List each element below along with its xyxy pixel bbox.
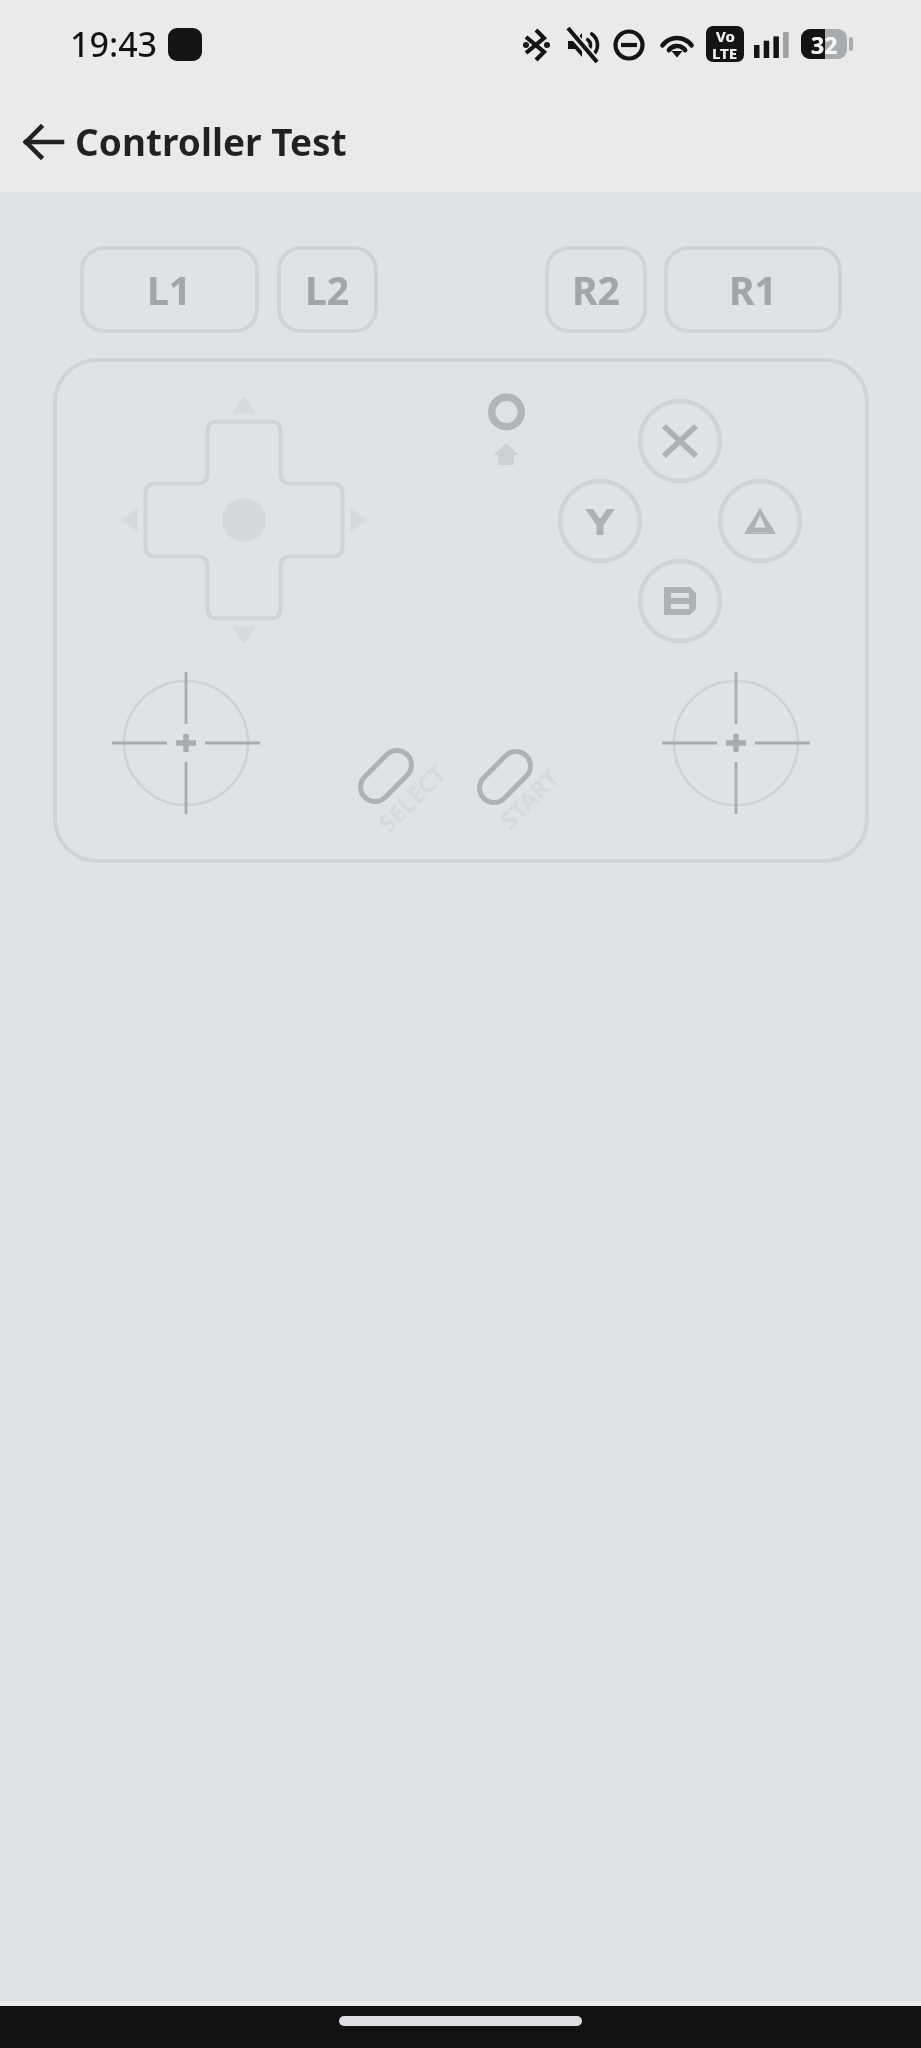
button[interactable]: L2 [267,259,387,319]
staticText: 19:43 [70,21,158,67]
staticText: 32 [811,29,838,59]
staticText: LTE [712,43,738,61]
staticText: START [492,761,566,835]
button[interactable]: L1 [109,259,229,319]
button[interactable]: D-pad [146,422,343,619]
staticText: Vo [716,26,735,44]
button[interactable]: B button [640,561,720,641]
staticText: SELECT [371,757,453,839]
button[interactable]: Home [486,392,528,434]
button[interactable]: R2 [536,259,656,319]
button[interactable]: A button [720,481,800,561]
staticText: R2 [572,263,620,316]
staticText: Controller Test [75,116,347,166]
button[interactable]: Left stick [124,681,248,805]
button[interactable]: Select [358,748,414,804]
staticText: L2 [305,263,350,316]
button[interactable]: Back [4,100,84,184]
button[interactable]: Right stick [674,681,798,805]
staticText: R1 [729,263,777,316]
button[interactable]: Y button [560,481,640,561]
button[interactable]: X button [640,401,720,481]
button[interactable]: R1 [693,259,813,319]
staticText: L1 [147,263,192,316]
button[interactable]: Start [477,749,533,805]
